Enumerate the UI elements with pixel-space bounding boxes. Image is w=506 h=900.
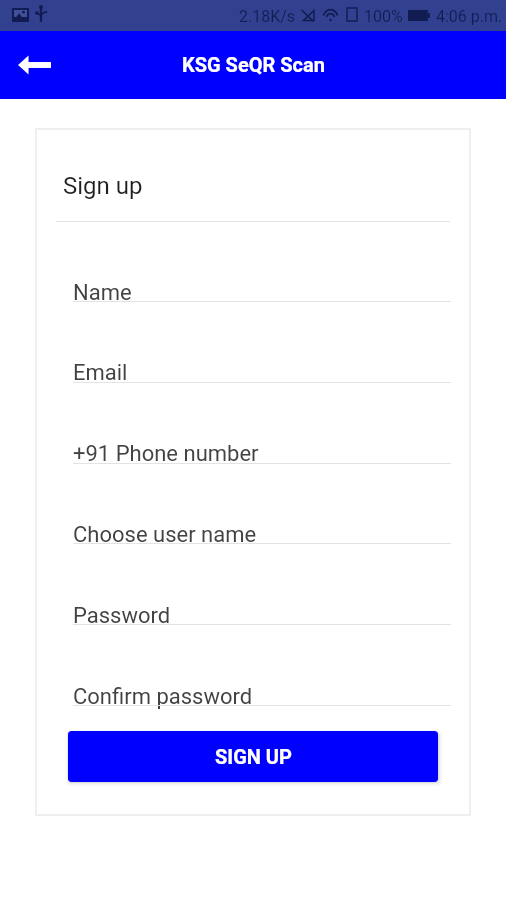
staticText: 100% xyxy=(364,7,403,26)
button[interactable]: +91 Phone number xyxy=(73,441,451,467)
staticText: +91 Phone number xyxy=(73,441,259,467)
staticText: Password xyxy=(73,603,171,629)
staticText: SIGN UP xyxy=(215,745,292,768)
staticText: KSG SeQR Scan xyxy=(182,53,325,76)
button[interactable]: Email xyxy=(73,360,451,386)
staticText: 4:06 p.m. xyxy=(436,7,503,26)
staticText: Confirm password xyxy=(73,684,253,710)
staticText: Name xyxy=(73,280,132,306)
staticText: Sign up xyxy=(63,172,143,200)
button[interactable]: Choose user name xyxy=(73,522,451,548)
staticText: 2.18K/s xyxy=(239,7,296,26)
button[interactable]: Confirm password xyxy=(73,684,451,710)
button[interactable]: SIGN UP xyxy=(68,731,438,782)
staticText: Choose user name xyxy=(73,522,257,548)
button[interactable]: Back xyxy=(6,37,62,93)
staticText: Email xyxy=(73,360,128,386)
button[interactable]: Password xyxy=(73,603,451,629)
button[interactable]: Name xyxy=(73,280,451,306)
